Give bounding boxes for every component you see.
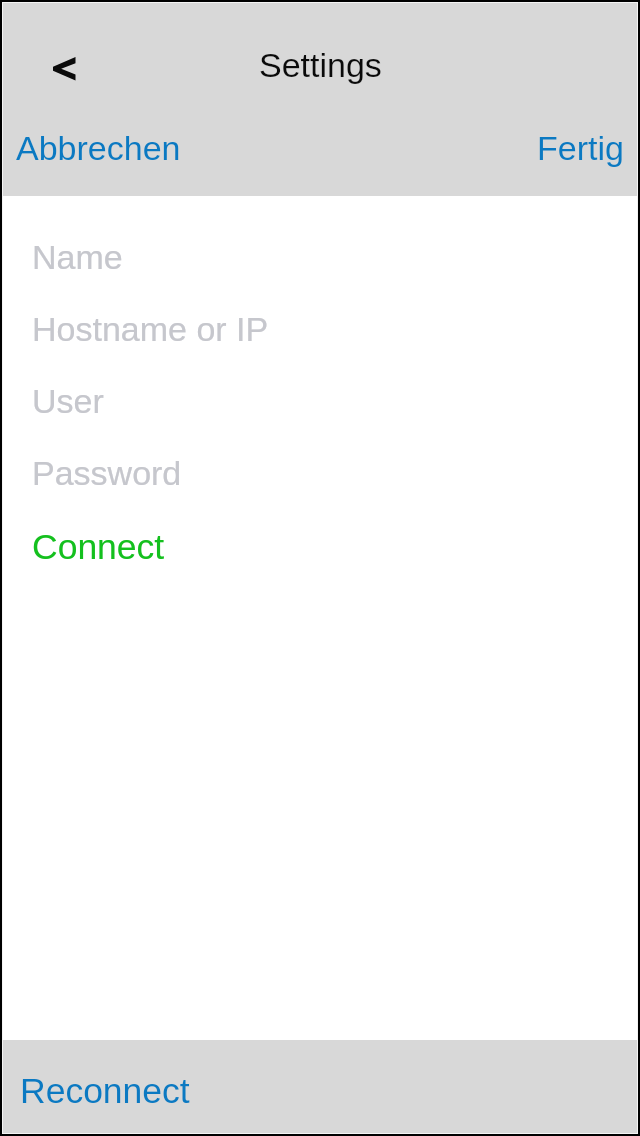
- button[interactable]: Abbrechen: [3, 121, 197, 175]
- staticText: User: [32, 382, 104, 420]
- button[interactable]: Hostname or IP: [3, 294, 637, 366]
- button[interactable]: User: [3, 366, 637, 438]
- button[interactable]: Reconnect: [3, 1063, 206, 1119]
- button[interactable]: Password: [3, 438, 637, 510]
- staticText: Name: [32, 238, 123, 276]
- staticText: Abbrechen: [16, 129, 181, 167]
- staticText: Connect: [32, 527, 165, 567]
- button[interactable]: Fertig: [521, 121, 637, 175]
- staticText: Password: [32, 454, 182, 492]
- staticText: Settings: [259, 46, 382, 84]
- button[interactable]: Back: [30, 34, 78, 82]
- button[interactable]: Name: [3, 222, 637, 294]
- staticText: Reconnect: [20, 1071, 190, 1111]
- staticText: Hostname or IP: [32, 310, 269, 348]
- staticText: Fertig: [537, 129, 624, 167]
- button[interactable]: Connect: [3, 511, 637, 583]
